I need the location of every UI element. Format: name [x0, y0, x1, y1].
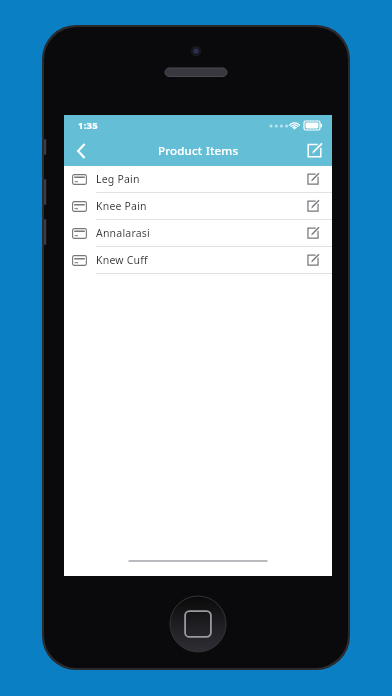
- staticText: Knee Pain: [96, 199, 303, 213]
- button[interactable]: New item: [296, 135, 332, 166]
- button[interactable]: Annalarasi: [64, 220, 332, 247]
- button[interactable]: Edit Knee Pain: [303, 195, 323, 217]
- button[interactable]: Knew Cuff: [64, 247, 332, 274]
- button[interactable]: Knee Pain: [64, 193, 332, 220]
- staticText: Knew Cuff: [96, 253, 303, 267]
- other: Home: [170, 596, 226, 652]
- button[interactable]: Edit Annalarasi: [303, 222, 323, 244]
- staticText: Annalarasi: [96, 226, 303, 240]
- staticText: Product Items: [158, 143, 239, 159]
- button[interactable]: Back: [64, 135, 98, 166]
- staticText: 1:35: [78, 119, 98, 132]
- button[interactable]: Edit Leg Pain: [303, 168, 323, 190]
- button[interactable]: Edit Knew Cuff: [303, 249, 323, 271]
- button[interactable]: Leg Pain: [64, 166, 332, 193]
- staticText: Leg Pain: [96, 172, 303, 186]
